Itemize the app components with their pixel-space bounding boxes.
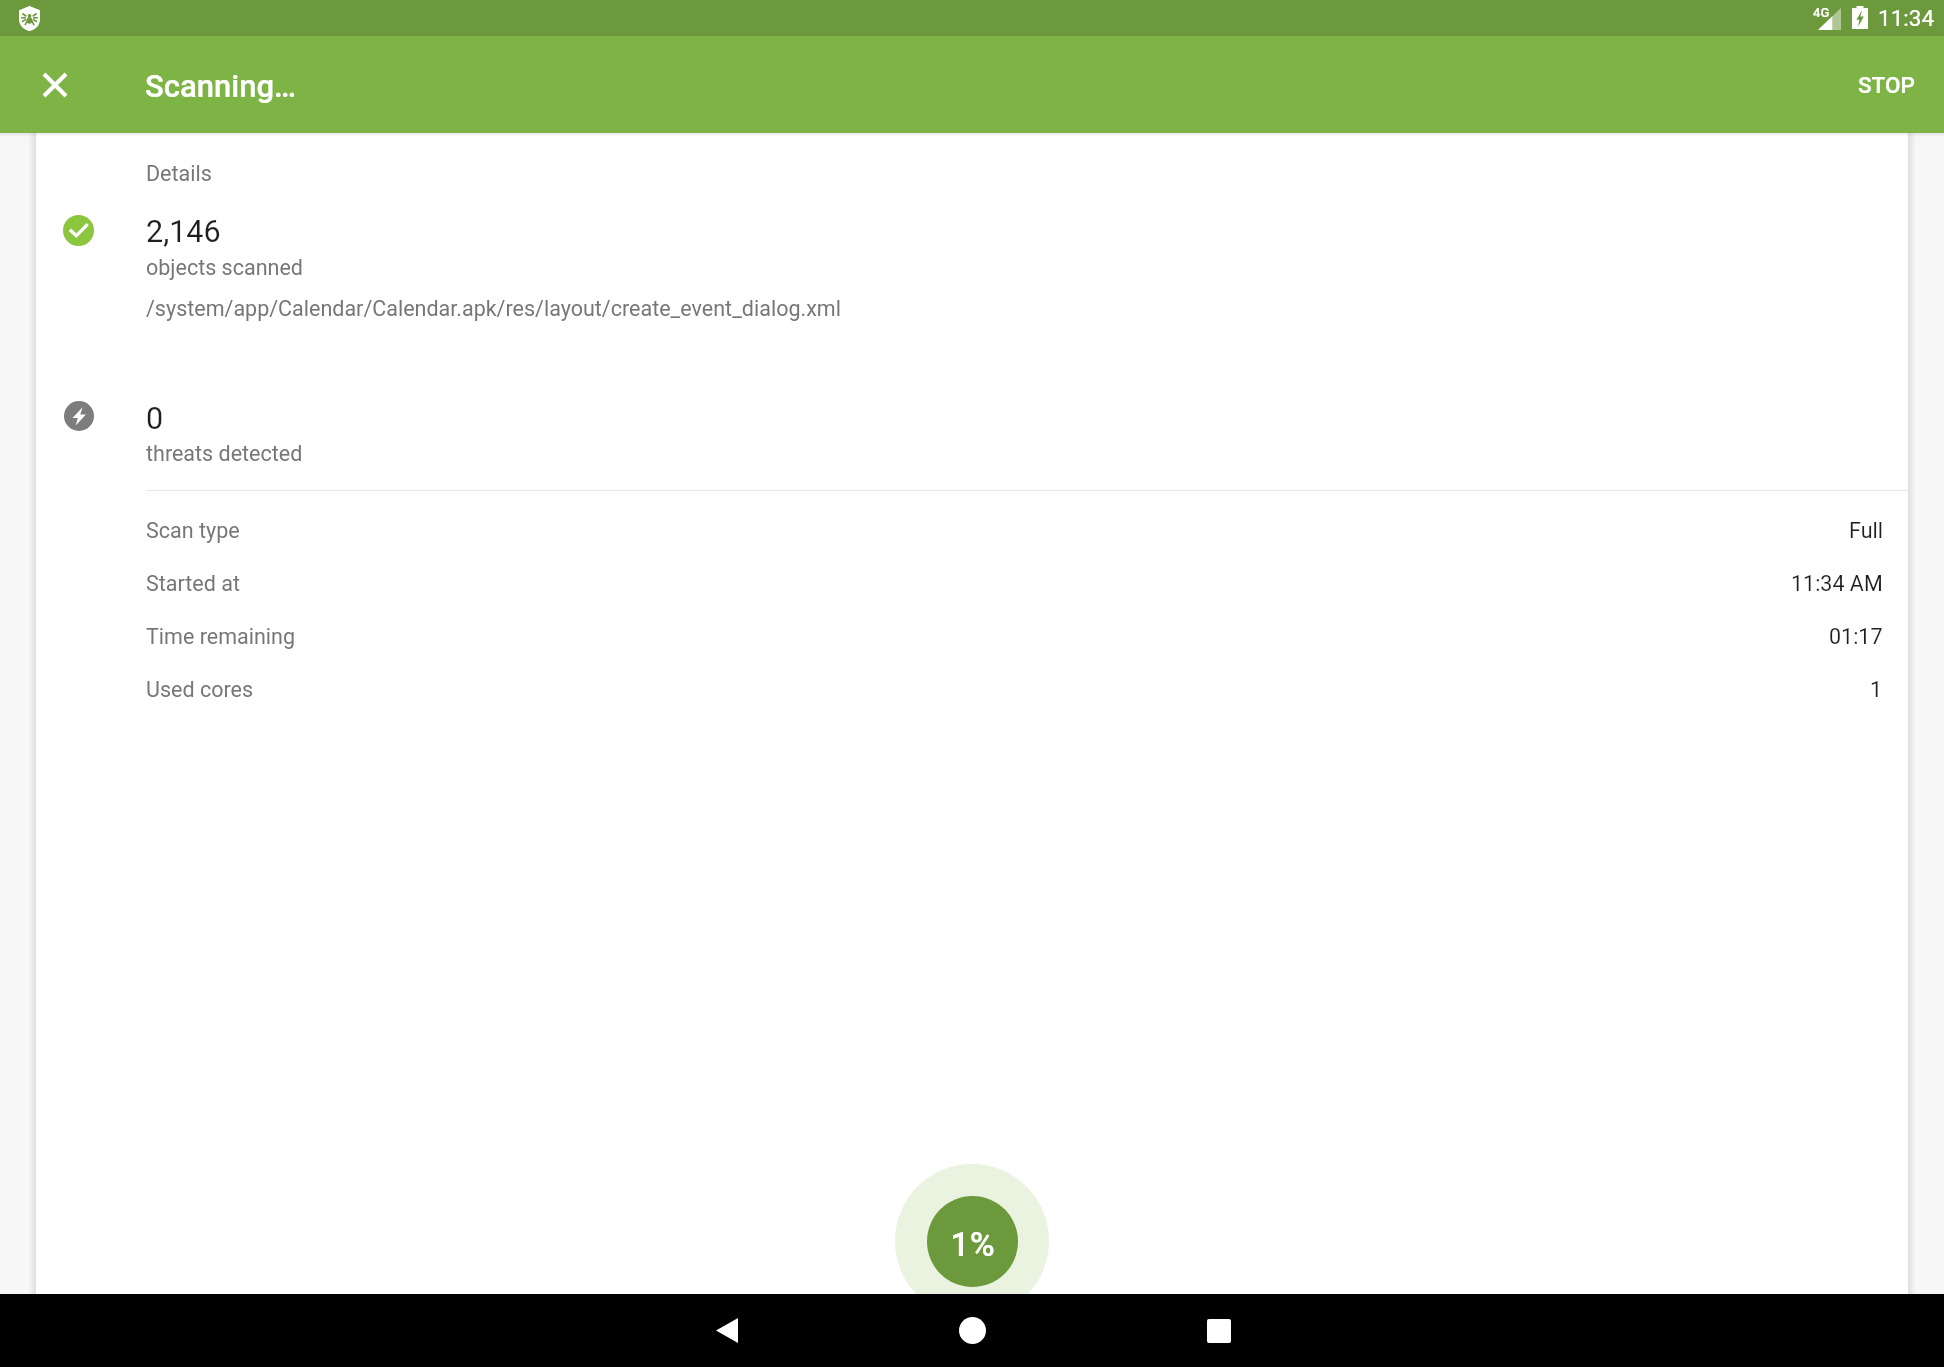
button[interactable]: Recents xyxy=(1182,1294,1255,1367)
staticText: 1% xyxy=(950,1224,995,1264)
button[interactable]: Home xyxy=(936,1294,1009,1367)
staticText: 11:34 AM xyxy=(1791,571,1883,596)
staticText: 2,146 xyxy=(146,214,221,250)
staticText: Details xyxy=(146,161,212,186)
button[interactable]: Back xyxy=(690,1294,763,1367)
button[interactable]: STOP xyxy=(1834,50,1939,120)
staticText: 4G xyxy=(1813,5,1830,20)
button[interactable]: Close xyxy=(23,53,87,117)
staticText: Started at xyxy=(146,571,240,596)
staticText: Scan type xyxy=(146,518,240,543)
staticText: threats detected xyxy=(146,441,303,466)
staticText: 1 xyxy=(1870,677,1883,702)
staticText: 01:17 xyxy=(1829,624,1883,649)
staticText: Time remaining xyxy=(146,624,295,649)
staticText: Scanning… xyxy=(145,68,296,104)
button[interactable]: 1% xyxy=(927,1196,1018,1287)
staticText: objects scanned xyxy=(146,255,303,280)
staticText: Full xyxy=(1849,518,1883,543)
staticText: 11:34 xyxy=(1878,5,1935,31)
staticText: 0 xyxy=(146,401,164,437)
staticText: /system/app/Calendar/Calendar.apk/res/la… xyxy=(146,296,841,321)
staticText: Used cores xyxy=(146,677,253,702)
staticText: STOP xyxy=(1858,72,1915,98)
